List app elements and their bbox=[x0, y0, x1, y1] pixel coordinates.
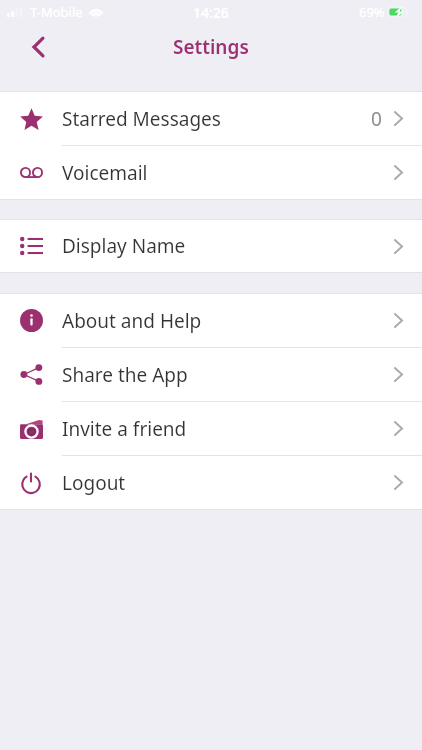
button[interactable]: Starred Messages bbox=[0, 92, 422, 145]
staticText: Settings bbox=[173, 34, 249, 60]
staticText: T-Mobile bbox=[30, 3, 83, 21]
staticText: About and Help bbox=[62, 308, 202, 334]
staticText: Share the App bbox=[62, 362, 188, 388]
button[interactable]: Voicemail bbox=[0, 146, 422, 199]
staticText: 14:26 bbox=[193, 3, 229, 22]
staticText: 0 bbox=[371, 106, 382, 132]
staticText: Voicemail bbox=[62, 160, 148, 186]
button[interactable]: Back bbox=[17, 25, 61, 69]
button[interactable]: Display Name bbox=[0, 220, 422, 272]
button[interactable]: Logout bbox=[0, 456, 422, 509]
staticText: 69% bbox=[359, 3, 385, 21]
staticText: Invite a friend bbox=[62, 416, 187, 442]
button[interactable]: Share the App bbox=[0, 348, 422, 401]
button[interactable]: About and Help bbox=[0, 294, 422, 347]
staticText: Display Name bbox=[62, 233, 186, 259]
staticText: Logout bbox=[62, 470, 126, 496]
staticText: Starred Messages bbox=[62, 106, 221, 132]
button[interactable]: Invite a friend bbox=[0, 402, 422, 455]
